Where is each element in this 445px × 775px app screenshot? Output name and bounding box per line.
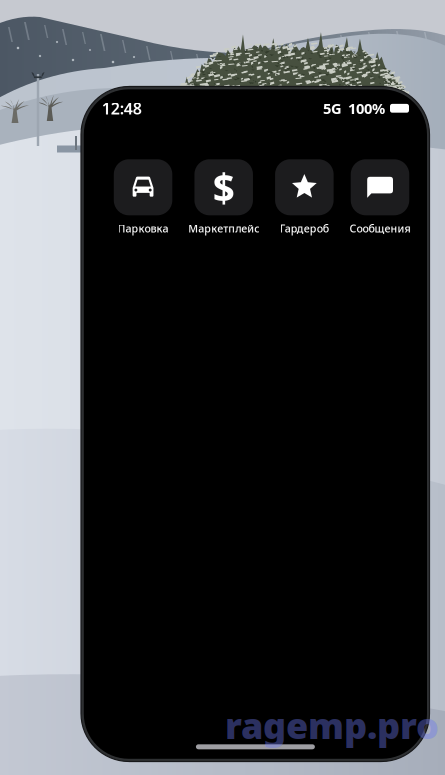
- staticText: Гардероб: [280, 221, 329, 235]
- staticText: 100%: [348, 99, 385, 118]
- staticText: $: [213, 162, 235, 213]
- button[interactable]: Гардероб: [275, 159, 334, 235]
- staticText: 5G: [323, 99, 342, 118]
- staticText: ragemp.pro: [225, 701, 439, 749]
- staticText: Сообщения: [349, 221, 410, 235]
- button[interactable]: $: [188, 159, 260, 235]
- staticText: Маркетплейс: [188, 221, 259, 235]
- staticText: Парковка: [117, 221, 168, 235]
- button[interactable]: Сообщения: [349, 159, 411, 235]
- staticText: 12:48: [102, 98, 142, 119]
- button[interactable]: Парковка: [114, 159, 172, 235]
